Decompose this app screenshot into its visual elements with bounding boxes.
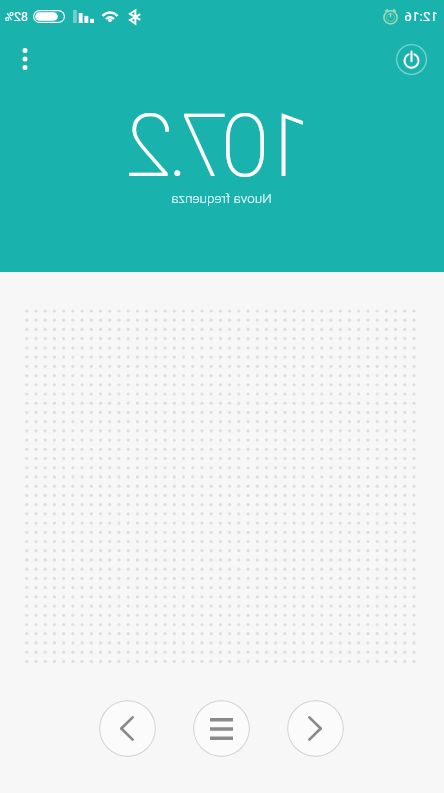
button[interactable]: Previous: [99, 700, 156, 757]
staticText: 107.2: [132, 94, 311, 197]
button[interactable]: Power: [389, 37, 434, 82]
button[interactable]: Next: [287, 700, 344, 757]
staticText: 12:16: [404, 8, 438, 24]
button[interactable]: Menu: [193, 700, 250, 757]
staticText: Nuova frequenza: [171, 190, 272, 206]
button[interactable]: More options: [3, 36, 48, 81]
staticText: 82%: [4, 9, 28, 24]
